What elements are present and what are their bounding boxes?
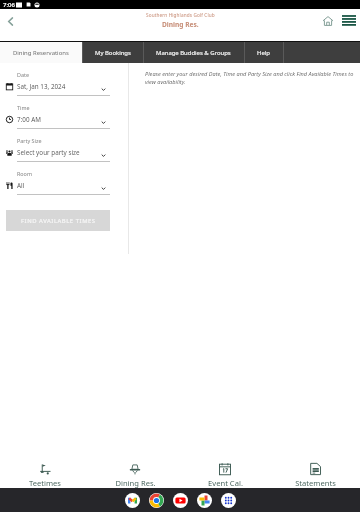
button[interactable]: Open app	[197, 493, 212, 508]
staticText: Time	[17, 104, 30, 111]
staticText: Statements	[295, 478, 336, 488]
button[interactable]: Open app	[149, 493, 164, 508]
staticText: Manage Buddies & Groups	[156, 49, 231, 57]
staticText: Help	[257, 49, 270, 57]
staticText: Date	[17, 71, 29, 78]
button[interactable]: Menu	[338, 10, 359, 31]
button[interactable]: Teetimes	[0, 455, 90, 488]
button[interactable]: Back	[0, 11, 20, 31]
button[interactable]: Room	[0, 172, 128, 205]
button[interactable]: Open app	[221, 493, 236, 508]
staticText: Party Size	[17, 137, 42, 144]
button[interactable]: Help	[244, 42, 283, 63]
button[interactable]: Home	[317, 10, 338, 31]
button[interactable]: Open app	[173, 493, 188, 508]
button[interactable]: My Bookings	[82, 42, 143, 63]
staticText: Event Cal.	[208, 478, 243, 488]
staticText: Southern Highlands Golf Club	[146, 12, 215, 18]
button[interactable]: Event Cal.	[180, 455, 270, 488]
staticText: Select your party size	[17, 148, 80, 157]
button[interactable]: Time	[0, 106, 128, 139]
staticText: My Bookings	[95, 49, 131, 57]
button[interactable]: Dining Reservations	[0, 42, 82, 63]
staticText: Dining Res.	[162, 20, 199, 29]
button[interactable]: Date	[0, 73, 128, 106]
staticText: Teetimes	[29, 478, 61, 488]
staticText: Please enter your desired Date, Time and…	[145, 70, 356, 85]
staticText: Sat, Jan 13, 2024	[17, 82, 66, 91]
button[interactable]: Statements	[270, 455, 360, 488]
button[interactable]: Open app	[125, 493, 140, 508]
staticText: 7:00 AM	[17, 115, 41, 124]
staticText: All	[17, 181, 25, 190]
staticText: 7:06	[3, 1, 15, 9]
button[interactable]: Manage Buddies & Groups	[143, 42, 244, 63]
staticText: FIND AVAILABLE TIMES	[21, 217, 96, 225]
staticText: Dining Reservations	[13, 49, 69, 57]
button[interactable]: Party Size	[0, 139, 128, 172]
button[interactable]: Dining Res.	[90, 455, 180, 488]
button[interactable]: FIND AVAILABLE TIMES	[6, 210, 110, 231]
staticText: Dining Res.	[115, 478, 156, 488]
staticText: Room	[17, 170, 32, 177]
